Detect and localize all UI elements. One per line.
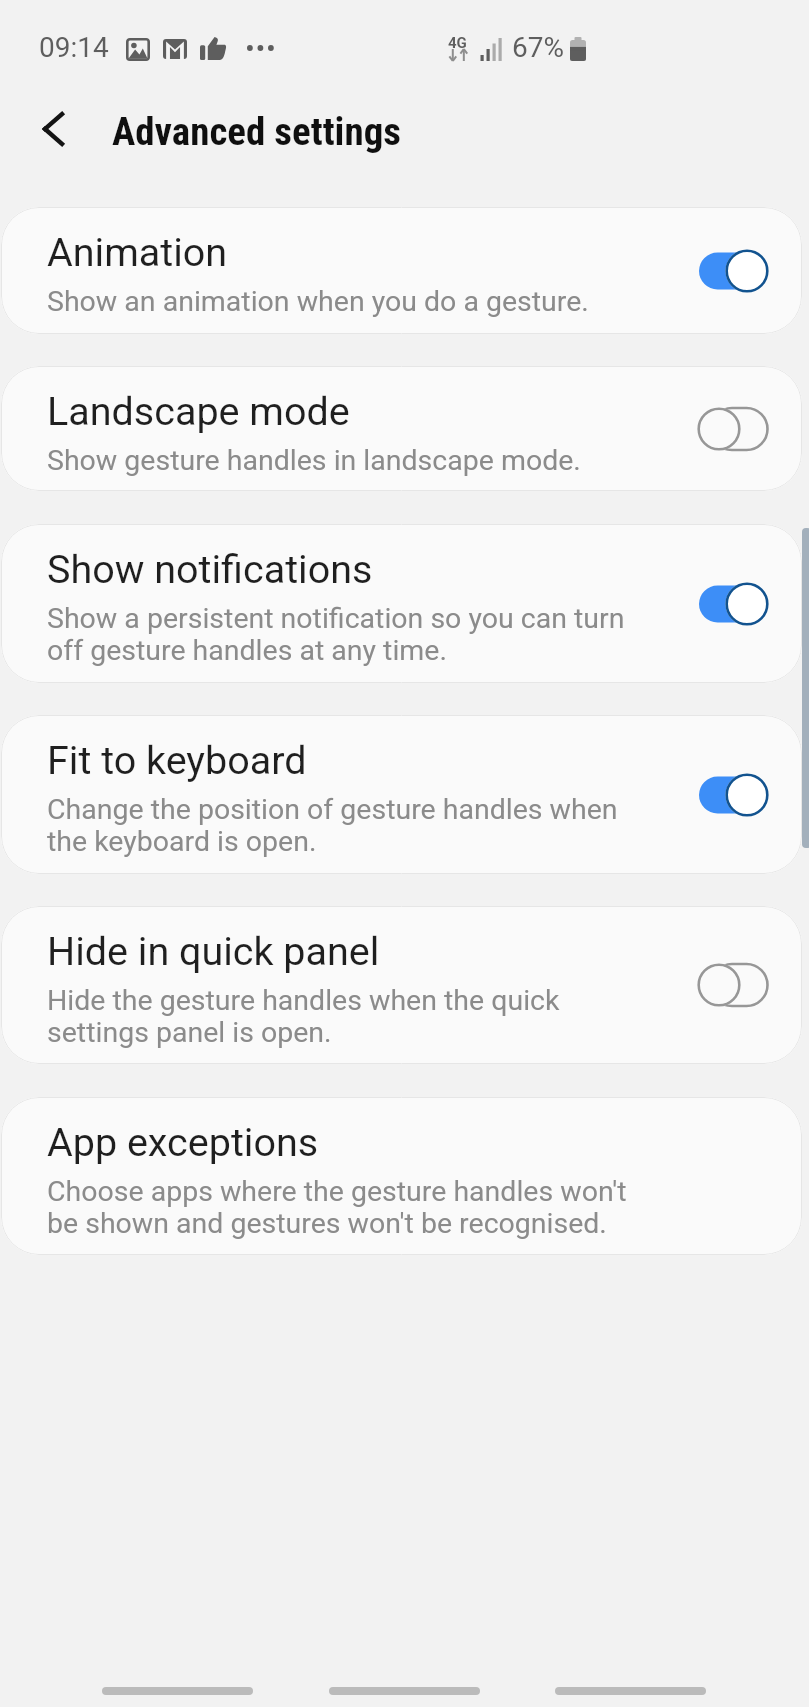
button[interactable]: Fit to keyboard [1,715,802,874]
button[interactable]: Switch off [697,962,769,1008]
staticText: the keyboard is open. [47,825,317,858]
staticText: 4G [448,34,467,52]
button[interactable]: Back [21,97,85,161]
button[interactable]: Navigation handle [329,1687,480,1695]
staticText: Show a persistent notification so you ca… [47,602,625,635]
staticText: Animation [47,229,228,275]
staticText: settings panel is open. [47,1016,332,1049]
staticText: Hide in quick panel [47,928,380,974]
button[interactable]: Switch on [697,248,769,294]
button[interactable]: Navigation handle [555,1687,706,1695]
staticText: Hide the gesture handles when the quick [47,984,560,1017]
staticText: Change the position of gesture handles w… [47,793,618,826]
staticText: Show gesture handles in landscape mode. [47,444,581,477]
button[interactable]: Hide in quick panel [1,906,802,1064]
staticText: Choose apps where the gesture handles wo… [47,1175,627,1208]
staticText: Fit to keyboard [47,737,307,783]
staticText: Landscape mode [47,388,350,434]
staticText: be shown and gestures won't be recognise… [47,1207,607,1240]
button[interactable]: Landscape mode [1,366,802,491]
staticText: Show notifications [47,546,373,592]
staticText: Show an animation when you do a gesture. [47,285,589,318]
staticText: off gesture handles at any time. [47,634,447,667]
button[interactable]: Switch on [697,581,769,627]
button[interactable]: Animation [1,207,802,334]
staticText: Advanced settings [112,109,401,155]
button[interactable]: Switch off [697,406,769,452]
button[interactable]: App exceptions [1,1097,802,1255]
staticText: 67% [512,31,564,64]
staticText: App exceptions [47,1119,319,1165]
staticText: 09:14 [39,31,109,64]
button[interactable]: Switch on [697,772,769,818]
button[interactable]: Show notifications [1,524,802,683]
button[interactable]: Navigation handle [102,1687,253,1695]
